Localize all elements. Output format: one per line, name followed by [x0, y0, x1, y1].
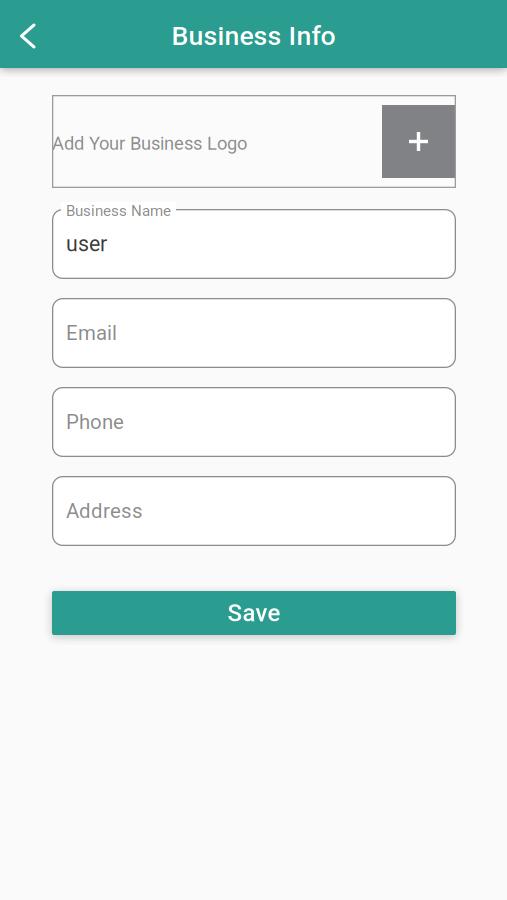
- button[interactable]: Phone: [52, 387, 456, 457]
- staticText: Add Your Business Logo: [52, 133, 247, 154]
- button[interactable]: Save: [52, 591, 456, 635]
- staticText: Phone: [66, 410, 124, 434]
- staticText: Save: [227, 599, 280, 627]
- staticText: Business Name: [66, 202, 171, 220]
- button[interactable]: user: [52, 209, 456, 279]
- staticText: user: [66, 231, 107, 256]
- button[interactable]: Back: [0, 0, 62, 68]
- staticText: Email: [66, 321, 117, 345]
- staticText: Business Info: [171, 20, 335, 52]
- button[interactable]: Address: [52, 476, 456, 546]
- button[interactable]: Add Your Business Logo: [52, 95, 456, 188]
- button[interactable]: Email: [52, 298, 456, 368]
- staticText: Address: [66, 499, 143, 523]
